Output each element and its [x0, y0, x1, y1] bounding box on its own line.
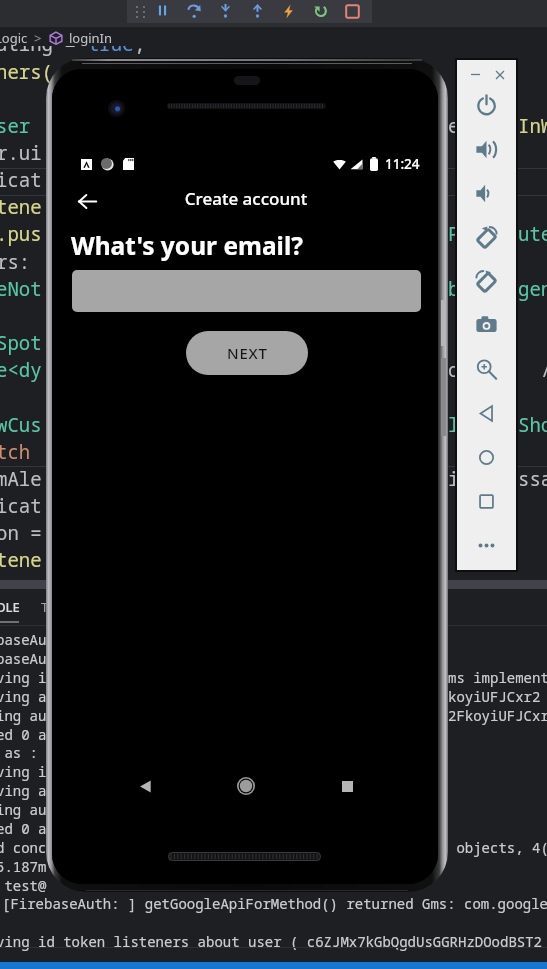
button[interactable]: Zoom — [470, 353, 502, 385]
staticText: Spot — [0, 330, 42, 356]
staticText: 5.187m — [0, 857, 47, 876]
button[interactable]: Rotate right — [470, 265, 502, 297]
staticText: baseAu — [0, 649, 47, 668]
staticText: ving i — [0, 762, 47, 781]
button[interactable]: Step into — [214, 0, 237, 23]
button[interactable]: Home — [470, 441, 502, 473]
staticText: icat — [0, 167, 42, 193]
button[interactable] — [72, 270, 421, 312]
staticText: objects, 4( — [448, 838, 547, 857]
staticText: CONSOLE — [0, 598, 20, 616]
button[interactable]: Screenshot — [470, 309, 502, 341]
staticText: true — [88, 31, 134, 57]
button[interactable]: Recents — [328, 767, 366, 805]
button[interactable]: Minimize — [466, 65, 485, 84]
button[interactable]: Back — [126, 767, 164, 805]
staticText: e<dy — [0, 357, 42, 383]
staticText: tene — [0, 547, 42, 573]
staticText: i — [448, 466, 460, 492]
staticText: ing au — [0, 800, 47, 819]
staticText: l — [448, 412, 460, 438]
staticText: mAle — [0, 466, 42, 492]
button[interactable]: NEXT — [186, 331, 308, 375]
staticText: ssa — [518, 466, 547, 492]
staticText: ute — [518, 221, 547, 247]
button[interactable]: Rerun — [309, 0, 332, 23]
staticText: baseAu — [0, 630, 47, 649]
staticText: 2FkoyiUFJCxr — [448, 706, 547, 725]
staticText: .pus — [0, 221, 42, 247]
staticText: ms implement — [448, 668, 547, 687]
button[interactable]: Volume down — [470, 177, 502, 209]
staticText: ed 0 a — [0, 819, 47, 838]
staticText: What's your email? — [71, 229, 303, 262]
button[interactable]: Stop — [341, 0, 364, 23]
staticText: > — [34, 29, 42, 47]
staticText: gen — [518, 276, 547, 302]
staticText: ; — [134, 31, 146, 57]
button[interactable]: Step out — [246, 0, 269, 23]
staticText: icat — [0, 493, 42, 519]
staticText: T — [41, 598, 49, 616]
button[interactable]: Step over — [183, 0, 206, 23]
staticText: eNot — [0, 276, 42, 302]
button[interactable]: Power — [470, 89, 502, 121]
staticText: [FirebaseAuth: ] getGoogleApiForMethod()… — [2, 894, 547, 913]
staticText: test@ — [0, 876, 47, 895]
button[interactable]: Pause — [151, 0, 174, 23]
staticText: rs: — [0, 249, 31, 275]
staticText: koyiUFJCxr2 — [448, 687, 541, 706]
staticText: ving i — [0, 668, 47, 687]
staticText: r.ui — [0, 140, 42, 166]
staticText: InW — [518, 113, 547, 139]
button[interactable]: More — [470, 529, 502, 561]
staticText: as : — [0, 743, 38, 762]
staticText: ed 0 a — [0, 725, 47, 744]
staticText: o — [448, 357, 460, 383]
staticText: Create account — [53, 187, 438, 210]
staticText: P — [448, 221, 460, 247]
staticText: d conc — [0, 838, 47, 857]
staticText: tene — [0, 194, 42, 220]
staticText: b — [448, 276, 460, 302]
button[interactable]: Rotate left — [470, 221, 502, 253]
staticText: NEXT — [227, 343, 268, 363]
staticText: 11:24 — [385, 155, 420, 173]
staticText: Logic — [0, 29, 28, 47]
staticText: tch — [0, 439, 31, 465]
button[interactable]: Back — [470, 397, 502, 429]
staticText: Sho — [518, 412, 547, 438]
button[interactable]: Move toolbar — [130, 0, 150, 23]
button[interactable]: Home — [227, 767, 265, 805]
staticText: ating = — [0, 31, 88, 57]
staticText: on = — [0, 520, 42, 546]
staticText: ving a — [0, 781, 47, 800]
button[interactable]: Evaluate — [277, 0, 300, 23]
button[interactable]: Volume up — [470, 133, 502, 165]
button[interactable]: Back — [69, 183, 105, 219]
staticText: / — [518, 357, 547, 383]
staticText: ving a — [0, 687, 47, 706]
staticText: ners( — [0, 59, 54, 85]
staticText: ser — [0, 113, 42, 139]
staticText: ing au — [0, 706, 47, 725]
staticText: wCus — [0, 412, 42, 438]
staticText: e — [448, 113, 460, 139]
staticText: ving id token listeners about user ( c6Z… — [0, 932, 542, 951]
button[interactable]: Overview — [470, 485, 502, 517]
button[interactable]: Close — [490, 65, 509, 84]
staticText: loginIn — [69, 29, 113, 47]
